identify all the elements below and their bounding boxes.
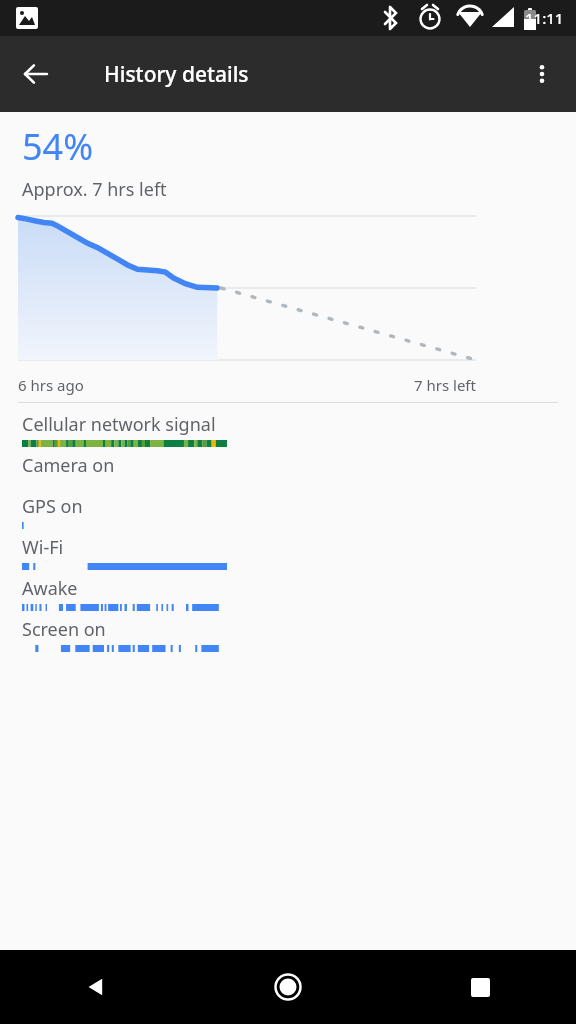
button[interactable]: Camera on [0,450,576,491]
staticText: Screen on [22,617,106,642]
staticText: 54% [22,122,94,171]
button[interactable]: More options [514,46,570,102]
button[interactable]: Back [68,959,124,1015]
staticText: Approx. 7 hrs left [22,177,167,202]
button[interactable]: Wi-Fi [0,532,576,573]
staticText: Awake [22,576,78,601]
staticText: 7 hrs left [414,375,476,395]
button[interactable]: GPS on [0,491,576,532]
staticText: Cellular network signal [22,412,216,437]
staticText: 11:11 [525,8,564,28]
button[interactable]: Screen on [0,614,576,655]
button[interactable]: Home [260,959,316,1015]
staticText: Wi-Fi [22,535,64,560]
staticText: History details [104,60,249,89]
button[interactable]: Recent apps [452,959,508,1015]
button[interactable]: Cellular network signal [0,409,576,450]
button[interactable]: Awake [0,573,576,614]
staticText: GPS on [22,494,83,519]
button[interactable]: Back [8,46,64,102]
staticText: 6 hrs ago [18,375,84,395]
staticText: Camera on [22,453,115,478]
